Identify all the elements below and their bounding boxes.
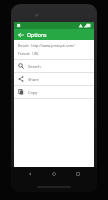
- staticText: Format: URL: [18, 51, 39, 56]
- button[interactable]: Back: [25, 169, 35, 179]
- staticText: Search: [28, 64, 41, 69]
- staticText: Share: [28, 77, 39, 82]
- staticText: Copy: [28, 90, 38, 95]
- button[interactable]: Share: [14, 73, 94, 85]
- staticText: Result: http://www.protopit.com/: [18, 43, 75, 48]
- button[interactable]: Home: [49, 169, 59, 179]
- staticText: Options: [27, 31, 47, 38]
- button[interactable]: Search: [14, 60, 94, 72]
- button[interactable]: Back: [14, 29, 27, 40]
- button[interactable]: Recents: [73, 169, 83, 179]
- button[interactable]: Copy: [14, 86, 94, 98]
